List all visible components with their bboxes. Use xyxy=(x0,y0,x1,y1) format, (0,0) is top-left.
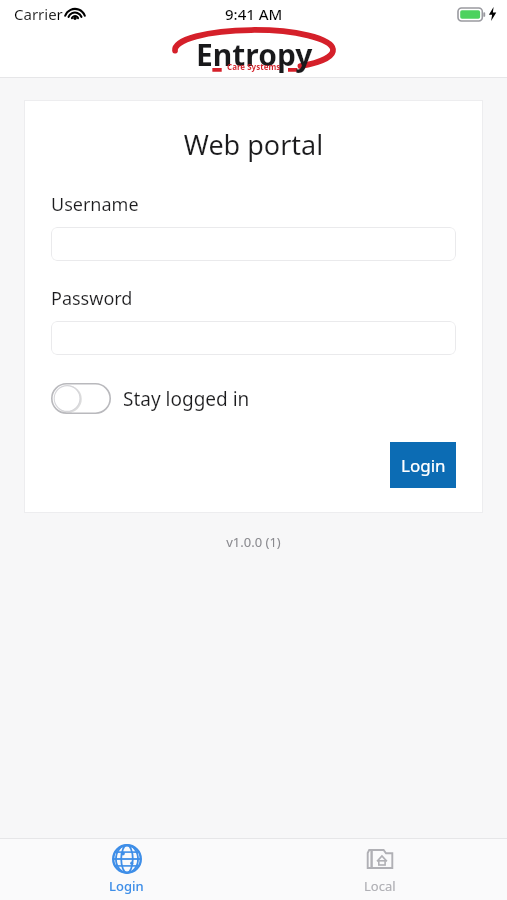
staticText: Web portal xyxy=(51,126,456,163)
staticText: v1.0.0 (1) xyxy=(0,533,507,551)
button[interactable] xyxy=(51,227,456,261)
staticText: Login xyxy=(109,877,144,895)
other: Login xyxy=(112,844,142,874)
staticText: Carrier xyxy=(14,4,63,24)
button[interactable]: Login xyxy=(390,442,456,488)
staticText: Entropy xyxy=(196,34,313,75)
staticText: Username xyxy=(51,192,139,217)
button[interactable]: Local xyxy=(364,844,396,895)
staticText: 9:41 AM xyxy=(225,4,283,24)
button[interactable]: Stay logged in xyxy=(51,383,250,414)
staticText: Login xyxy=(401,454,446,477)
other: Local xyxy=(365,844,395,874)
staticText: Password xyxy=(51,286,133,311)
staticText: Care Systems xyxy=(227,61,281,72)
staticText: Local xyxy=(364,877,396,895)
button[interactable]: Login xyxy=(109,844,144,895)
staticText: Stay logged in xyxy=(123,386,250,412)
button[interactable] xyxy=(51,321,456,355)
